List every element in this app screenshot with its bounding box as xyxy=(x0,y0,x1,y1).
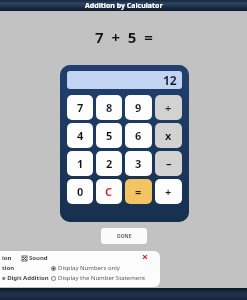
button[interactable]: 3 xyxy=(125,151,152,176)
button[interactable]: 9 xyxy=(125,95,152,120)
staticText: ion xyxy=(2,254,12,262)
button[interactable]: = xyxy=(125,179,152,204)
staticText: DONE xyxy=(117,233,132,240)
staticText: tion xyxy=(2,264,15,272)
button[interactable]: 1 xyxy=(67,151,93,176)
button[interactable]: x xyxy=(155,123,182,148)
staticText: 1 xyxy=(77,156,84,171)
staticText: 0 xyxy=(77,184,84,199)
staticText: 6 xyxy=(135,128,142,143)
staticText: e Digit Addition xyxy=(2,274,49,282)
staticText: 8 xyxy=(106,100,113,115)
button[interactable]: 5 xyxy=(96,123,122,148)
staticText: = xyxy=(135,184,142,199)
button[interactable]: – xyxy=(155,151,182,176)
staticText: C xyxy=(105,184,113,199)
staticText: 2 xyxy=(106,156,113,171)
staticText: Display the Number Statement xyxy=(58,274,146,282)
button[interactable]: DONE xyxy=(101,228,147,244)
staticText: Display Numbers only xyxy=(58,264,120,272)
button[interactable]: ÷ xyxy=(155,95,182,120)
button[interactable]: 6 xyxy=(125,123,152,148)
button[interactable]: Close xyxy=(142,254,148,260)
staticText: ÷ xyxy=(165,100,172,115)
button[interactable]: + xyxy=(155,179,182,204)
button[interactable]: 8 xyxy=(96,95,122,120)
button[interactable]: 7 xyxy=(67,95,93,120)
staticText: 7 xyxy=(77,100,84,115)
staticText: 7 + 5 = xyxy=(95,27,153,47)
button[interactable]: Display the Number Statement xyxy=(51,274,146,282)
staticText: x xyxy=(165,128,172,143)
staticText: 12 xyxy=(163,72,177,88)
button[interactable]: C xyxy=(96,179,122,204)
staticText: 5 xyxy=(106,128,113,143)
button[interactable]: 0 xyxy=(67,179,93,204)
staticText: 9 xyxy=(135,100,142,115)
staticText: 4 xyxy=(77,128,84,143)
button[interactable]: Display Numbers only xyxy=(51,264,120,272)
button[interactable]: 2 xyxy=(96,151,122,176)
button[interactable]: 4 xyxy=(67,123,93,148)
button[interactable]: Sound xyxy=(22,254,48,262)
staticText: + xyxy=(165,184,172,199)
staticText: Addition by Calculator xyxy=(85,1,163,11)
staticText: – xyxy=(166,156,172,171)
staticText: 3 xyxy=(135,156,142,171)
staticText: Sound xyxy=(29,254,48,262)
